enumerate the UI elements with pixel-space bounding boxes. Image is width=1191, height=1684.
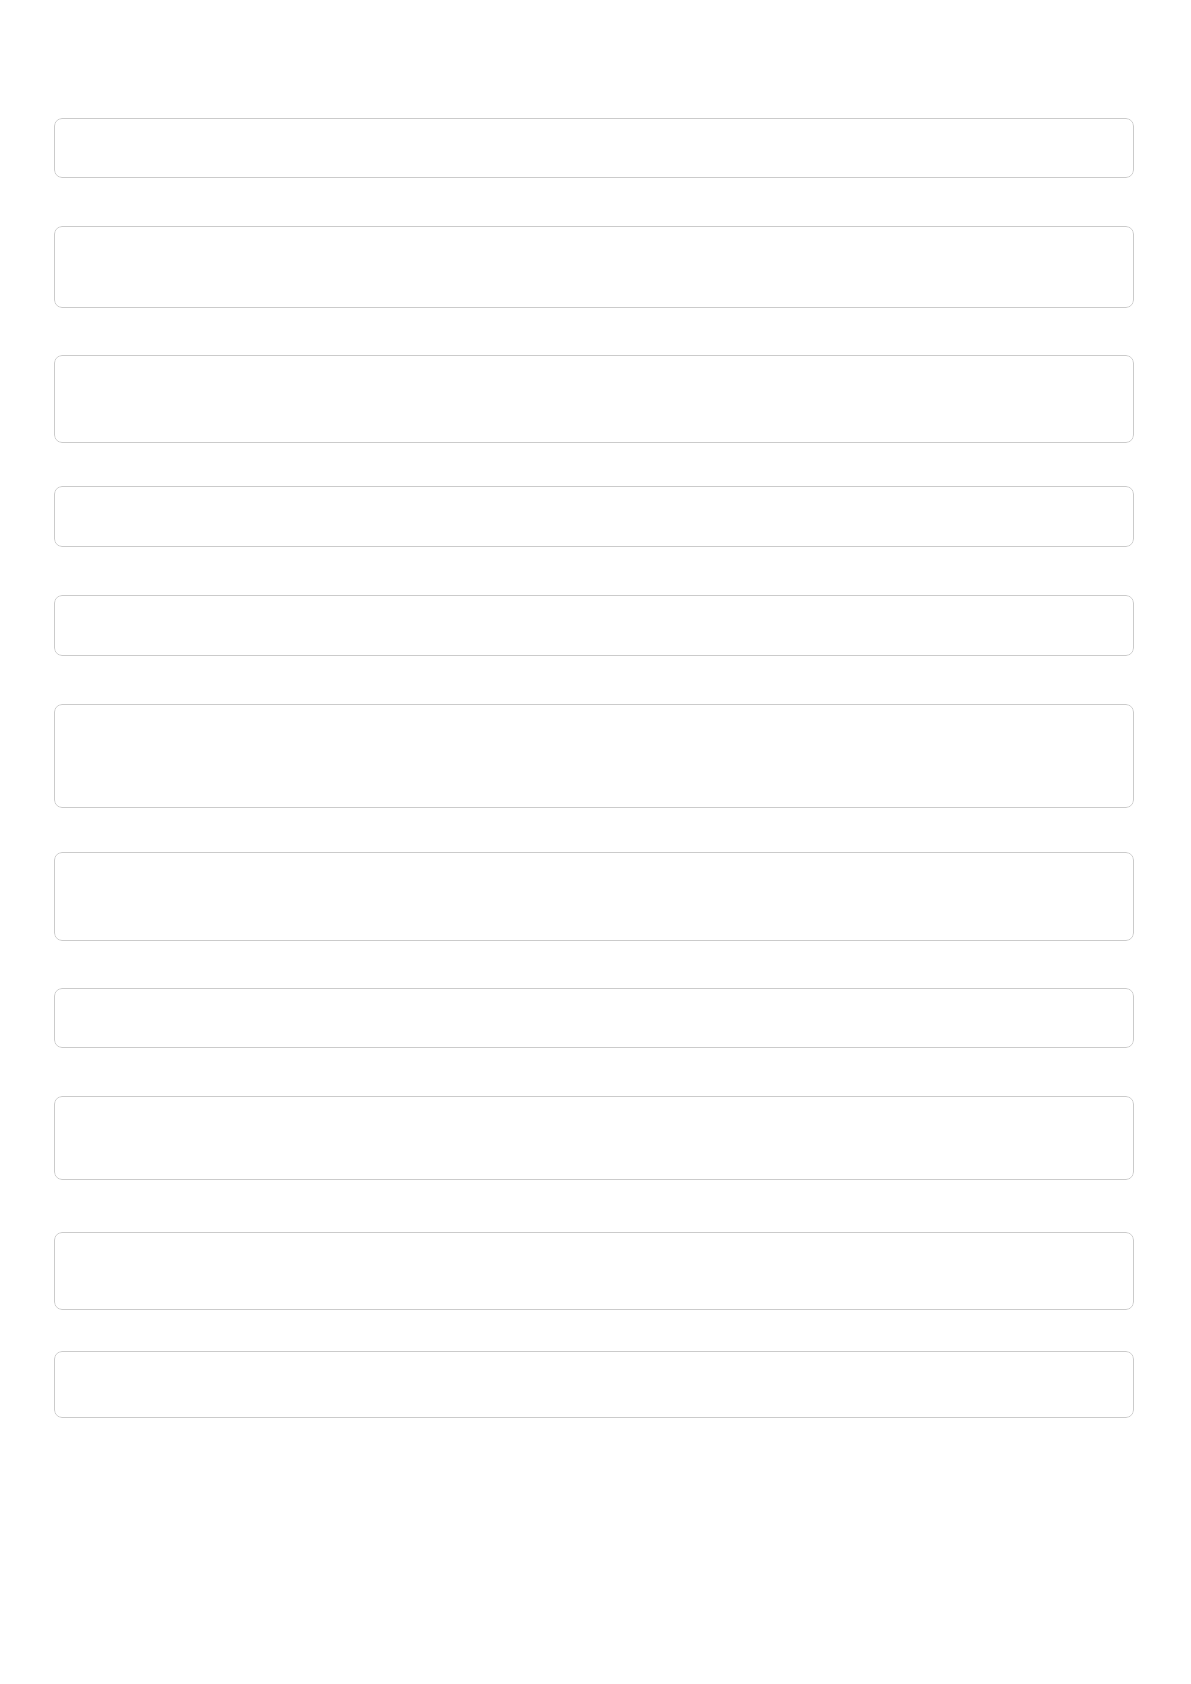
button[interactable]: List item 7 bbox=[54, 852, 1134, 941]
button[interactable]: List item 8 bbox=[54, 988, 1134, 1048]
button[interactable]: List item 5 bbox=[54, 595, 1134, 656]
button[interactable]: List item 9 bbox=[54, 1096, 1134, 1180]
button[interactable]: List item 4 bbox=[54, 486, 1134, 547]
button[interactable]: List item 10 bbox=[54, 1232, 1134, 1310]
button[interactable]: List item 11 bbox=[54, 1351, 1134, 1418]
button[interactable]: List item 6 bbox=[54, 704, 1134, 808]
button[interactable]: List item 1 bbox=[54, 118, 1134, 178]
button[interactable]: List item 2 bbox=[54, 226, 1134, 308]
button[interactable]: List item 3 bbox=[54, 355, 1134, 443]
